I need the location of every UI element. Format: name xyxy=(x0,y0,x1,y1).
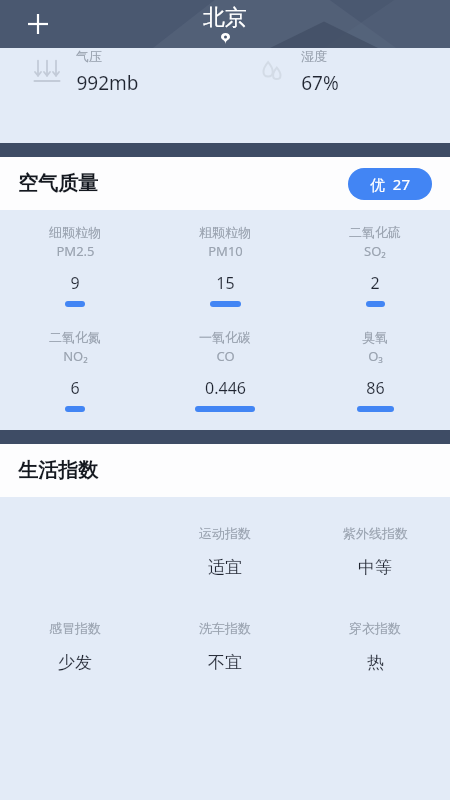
staticText: 热 xyxy=(367,652,384,673)
button[interactable]: 二氧化硫 xyxy=(300,224,450,307)
button[interactable]: 湿度 xyxy=(225,48,450,96)
button[interactable]: 穿衣指数 xyxy=(300,620,450,673)
staticText: 洗车指数 xyxy=(199,620,251,636)
staticText: 北京 xyxy=(203,4,247,32)
button[interactable]: 紫外线指数 xyxy=(300,525,450,578)
button[interactable]: 运动指数 xyxy=(150,525,300,578)
staticText: 运动指数 xyxy=(199,525,251,541)
staticText: 紫外线指数 xyxy=(343,525,408,541)
button[interactable]: 细颗粒物 xyxy=(0,224,150,307)
staticText: 一氧化碳 xyxy=(199,329,251,345)
staticText: PM2.5 xyxy=(56,242,95,260)
button[interactable]: 一氧化碳 xyxy=(150,329,300,412)
staticText: 臭氧 xyxy=(362,329,388,345)
staticText: 15 xyxy=(216,272,235,294)
button[interactable]: Add city xyxy=(18,4,58,44)
staticText: 空气质量 xyxy=(18,171,98,196)
staticText: 优 27 xyxy=(370,174,410,194)
button[interactable]: 空气质量 xyxy=(0,157,450,210)
staticText: 气压 xyxy=(76,48,102,64)
staticText: SO₂ xyxy=(364,242,386,260)
staticText: 0.446 xyxy=(205,377,246,399)
button[interactable]: 北京 xyxy=(203,4,247,44)
staticText: 9 xyxy=(70,272,80,294)
staticText: 生活指数 xyxy=(18,458,98,483)
staticText: 少发 xyxy=(58,652,92,673)
staticText: PM10 xyxy=(208,242,243,260)
staticText: 细颗粒物 xyxy=(49,224,101,240)
staticText: 粗颗粒物 xyxy=(199,224,251,240)
button[interactable]: 气压 xyxy=(0,48,225,96)
button[interactable]: 生活指数 xyxy=(0,444,450,497)
staticText: O₃ xyxy=(368,347,383,365)
staticText: 992mb xyxy=(76,70,139,96)
staticText: 86 xyxy=(366,377,385,399)
staticText: CO xyxy=(216,347,235,365)
button[interactable]: 臭氧 xyxy=(300,329,450,412)
staticText: 穿衣指数 xyxy=(349,620,401,636)
staticText: 中等 xyxy=(358,557,392,578)
staticText: 感冒指数 xyxy=(49,620,101,636)
staticText: NO₂ xyxy=(63,347,88,365)
staticText: 湿度 xyxy=(301,48,327,64)
staticText: 适宜 xyxy=(208,557,242,578)
button[interactable]: 优 27 xyxy=(348,168,432,200)
staticText: 二氧化氮 xyxy=(49,329,101,345)
staticText: 6 xyxy=(70,377,80,399)
button[interactable]: 粗颗粒物 xyxy=(150,224,300,307)
staticText: 二氧化硫 xyxy=(349,224,401,240)
staticText: 67% xyxy=(301,70,339,96)
button[interactable]: 感冒指数 xyxy=(0,620,150,673)
staticText: 2 xyxy=(370,272,380,294)
button[interactable]: 二氧化氮 xyxy=(0,329,150,412)
staticText: 不宜 xyxy=(208,652,242,673)
button[interactable]: 洗车指数 xyxy=(150,620,300,673)
